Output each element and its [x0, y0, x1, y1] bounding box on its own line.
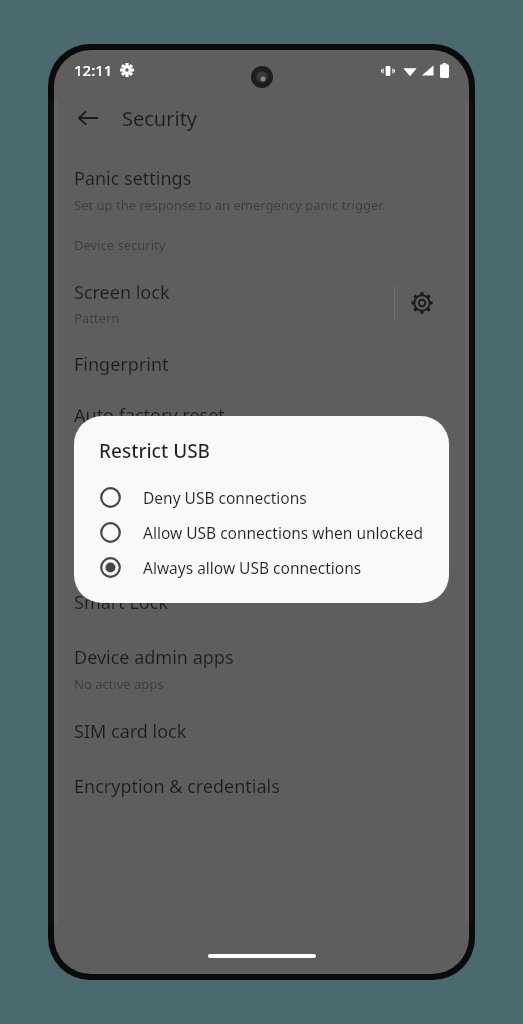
staticText: Restrict USB	[99, 438, 211, 464]
staticText: Fingerprint	[74, 352, 169, 377]
button[interactable]: Smart Lock	[74, 590, 449, 615]
button[interactable]: Restrict USB	[74, 497, 449, 564]
button[interactable]: Device admin apps	[74, 645, 449, 693]
staticText: Panic settings	[74, 166, 192, 191]
staticText: Allow USB connections when unlocked	[143, 522, 423, 543]
button[interactable]: Always allow USB connections	[74, 550, 449, 585]
button[interactable]: Encryption & credentials	[74, 774, 449, 799]
staticText: Encryption & credentials	[74, 774, 280, 799]
staticText: Pattern	[74, 309, 120, 327]
staticText: Native debug	[74, 454, 188, 479]
button[interactable]: SIM card lock	[74, 719, 449, 744]
staticText: Deny USB connections	[143, 487, 307, 508]
staticText: Smart Lock	[74, 590, 168, 615]
button[interactable]: Panic settings	[74, 166, 449, 214]
button[interactable]: Native debug	[74, 454, 449, 479]
staticText: Security	[122, 105, 198, 132]
staticText: No active apps	[74, 675, 164, 693]
staticText: Restrict USB	[74, 497, 178, 522]
staticText: 12:11	[74, 60, 113, 80]
button[interactable]: Back	[66, 96, 110, 140]
button[interactable]: Allow USB connections when unlocked	[74, 515, 449, 550]
button[interactable]: Fingerprint	[74, 352, 449, 377]
staticText: Control support for USB peripherals such…	[74, 527, 449, 564]
staticText: Screen lock	[74, 280, 170, 305]
staticText: Always allow USB connections	[143, 557, 362, 578]
button[interactable]: Auto factory reset	[74, 403, 449, 428]
staticText: Set up the response to an emergency pani…	[74, 196, 386, 214]
staticText: Device security	[74, 236, 166, 254]
staticText: SIM card lock	[74, 719, 187, 744]
staticText: Device admin apps	[74, 645, 234, 670]
button[interactable]: Deny USB connections	[74, 480, 449, 515]
button[interactable]: Screen lock settings	[395, 276, 449, 330]
button[interactable]: Screen lock	[74, 276, 449, 330]
staticText: Auto factory reset	[74, 403, 225, 428]
